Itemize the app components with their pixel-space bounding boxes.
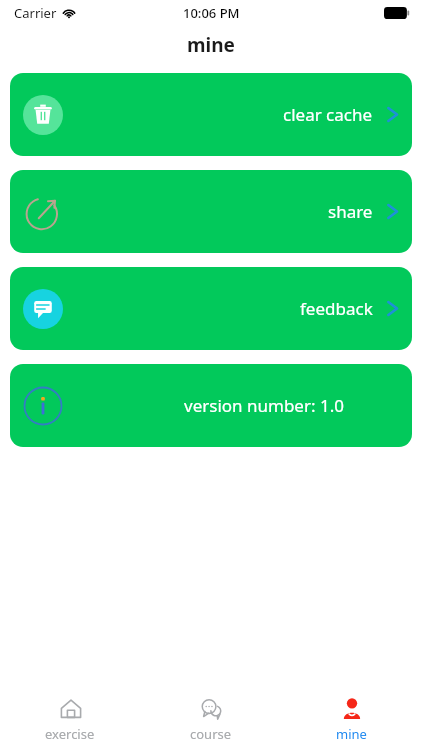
staticText: share — [328, 200, 373, 223]
staticText: exercise — [45, 725, 95, 743]
staticText: mine — [187, 32, 235, 58]
button[interactable]: Clear cache — [10, 73, 412, 156]
staticText: Carrier — [14, 4, 57, 22]
staticText: version number: 1.0 — [184, 394, 344, 417]
button[interactable]: exercise — [0, 688, 140, 750]
button[interactable]: Feedback — [10, 267, 412, 350]
staticText: clear cache — [283, 103, 373, 126]
button[interactable]: course — [140, 688, 281, 750]
button[interactable]: Share — [10, 170, 412, 253]
button[interactable]: Version number — [10, 364, 412, 447]
staticText: 10:06 PM — [183, 4, 240, 22]
button[interactable]: mine — [281, 688, 422, 750]
other: Clear cache — [23, 95, 63, 135]
other: Version number — [23, 386, 63, 426]
staticText: course — [190, 725, 232, 743]
other: Feedback — [23, 289, 63, 329]
staticText: mine — [336, 725, 367, 743]
staticText: feedback — [300, 297, 373, 320]
other: Share — [23, 192, 63, 232]
